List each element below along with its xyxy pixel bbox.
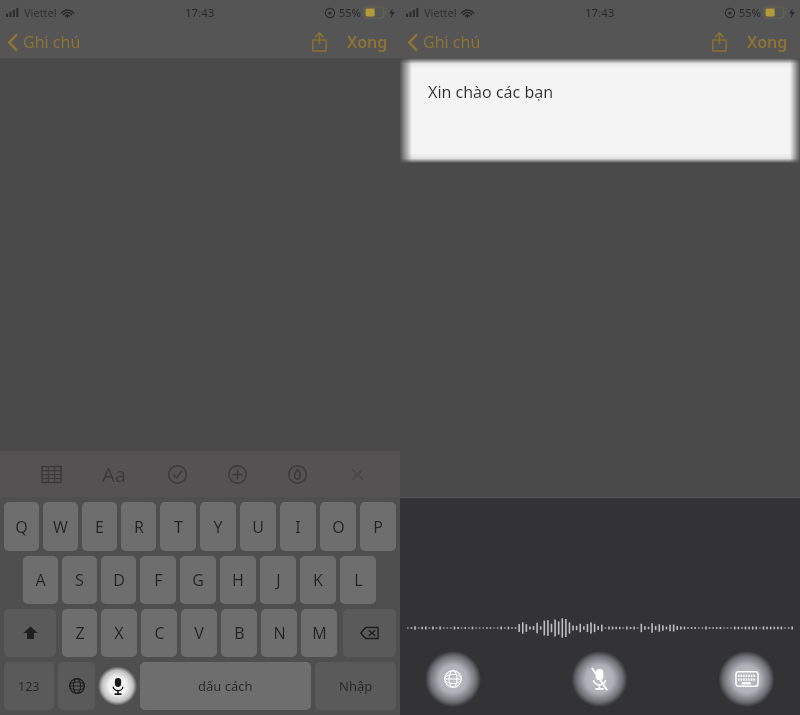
button[interactable]: R (121, 502, 156, 551)
staticText: Q (15, 516, 28, 538)
button[interactable]: M (301, 609, 337, 657)
button[interactable]: K (300, 556, 336, 604)
button[interactable]: V (181, 609, 217, 657)
button[interactable]: Mute (552, 651, 647, 707)
staticText: W (53, 516, 68, 538)
button[interactable]: 123 (4, 662, 54, 710)
button[interactable]: P (360, 502, 396, 551)
staticText: 17:43 (585, 5, 615, 21)
staticText: J (276, 569, 281, 591)
button[interactable]: N (261, 609, 297, 657)
button[interactable]: Add attachment (220, 457, 254, 491)
button[interactable]: Table (34, 457, 68, 491)
button[interactable]: Keyboard (699, 651, 794, 707)
staticText: K (313, 569, 323, 591)
staticText: 123 (18, 678, 40, 695)
staticText: U (252, 516, 264, 538)
staticText: D (113, 569, 125, 591)
staticText: L (354, 569, 363, 591)
button[interactable]: Shift (4, 609, 56, 657)
button[interactable]: Markup (280, 457, 314, 491)
button[interactable]: D (101, 556, 136, 604)
button[interactable]: Dictation (98, 662, 137, 710)
staticText: dấu cách (198, 677, 253, 695)
staticText: 55% (739, 5, 761, 20)
staticText: Viettel (424, 5, 457, 20)
button[interactable]: S (62, 556, 97, 604)
staticText: 55% (339, 5, 361, 20)
staticText: M (312, 622, 327, 644)
staticText: Ghi chú (23, 31, 81, 53)
staticText: B (234, 622, 245, 644)
staticText: N (273, 622, 286, 644)
staticText: P (373, 516, 383, 538)
button[interactable]: Aa (94, 454, 134, 494)
button[interactable]: X (101, 609, 137, 657)
staticText: A (35, 569, 46, 591)
button[interactable]: T (160, 502, 196, 551)
button[interactable]: Ghi chú (400, 27, 489, 57)
staticText: Aa (102, 461, 126, 488)
button[interactable]: F (140, 556, 176, 604)
staticText: E (95, 516, 104, 538)
staticText: G (192, 569, 204, 591)
staticText: H (232, 569, 244, 591)
staticText: Viettel (24, 5, 57, 20)
staticText: V (194, 622, 204, 644)
button[interactable]: Share (701, 25, 737, 58)
button[interactable]: G (180, 556, 216, 604)
staticText: Xong (747, 31, 788, 52)
button[interactable]: Share (301, 25, 337, 58)
button[interactable]: Xong (737, 25, 798, 58)
staticText: S (75, 569, 84, 591)
button[interactable]: Y (200, 502, 236, 551)
staticText: T (174, 516, 183, 538)
button[interactable]: I (280, 502, 316, 551)
button[interactable]: U (240, 502, 276, 551)
button[interactable]: A (23, 556, 58, 604)
button[interactable]: Next keyboard (406, 651, 500, 707)
button[interactable]: Xong (337, 25, 398, 58)
button[interactable]: Next keyboard (58, 662, 95, 710)
button[interactable]: Backspace (343, 609, 396, 657)
staticText: I (295, 516, 301, 538)
staticText: O (332, 516, 345, 538)
button[interactable]: J (260, 556, 296, 604)
button[interactable]: L (340, 556, 376, 604)
button[interactable]: O (320, 502, 356, 551)
staticText: 17:43 (185, 5, 215, 21)
button[interactable]: Checklist (160, 457, 194, 491)
button[interactable]: B (221, 609, 257, 657)
staticText: Ghi chú (423, 31, 481, 53)
button[interactable]: Ghi chú (0, 27, 89, 57)
staticText: R (134, 516, 144, 538)
button[interactable]: Z (62, 609, 97, 657)
button[interactable]: H (220, 556, 256, 604)
staticText: Y (213, 516, 223, 538)
staticText: Z (75, 622, 85, 644)
button[interactable]: Nhập (315, 662, 396, 710)
button[interactable]: C (141, 609, 177, 657)
staticText: C (154, 622, 165, 644)
staticText: Xong (347, 31, 388, 52)
staticText: X (114, 622, 124, 644)
button[interactable]: dấu cách (140, 662, 311, 710)
button[interactable]: Q (4, 502, 39, 551)
button[interactable]: E (82, 502, 117, 551)
staticText: F (154, 569, 163, 591)
staticText: Nhập (339, 677, 373, 695)
button[interactable]: W (43, 502, 78, 551)
staticText: Xin chào các bạn (428, 81, 554, 103)
